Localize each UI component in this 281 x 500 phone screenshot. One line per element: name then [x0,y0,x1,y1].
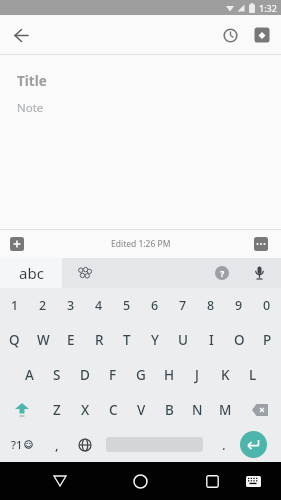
button[interactable] [239,392,281,427]
button[interactable]: 0 [253,288,281,322]
button[interactable]: U [169,322,197,357]
staticText: 8 [207,297,215,314]
button[interactable]: O [225,322,253,357]
staticText: G [136,366,146,384]
button[interactable]: T [113,322,141,357]
staticText: P [263,331,272,349]
staticText: . [222,436,226,454]
staticText: A [25,366,34,384]
staticText: 4 [95,297,103,314]
button[interactable]: V [127,392,155,427]
button[interactable] [0,392,43,427]
staticText: S [53,366,61,384]
staticText: W [37,331,50,349]
button[interactable]: Z [43,392,71,427]
staticText: Q [9,331,20,349]
button[interactable]: 2 [29,288,57,322]
staticText: K [221,366,230,384]
button[interactable]: 5 [113,288,141,322]
staticText: Title [17,72,47,90]
staticText: E [67,331,75,349]
button[interactable]: L [239,357,267,392]
staticText: Z [53,401,61,419]
button[interactable]: Q [0,322,29,357]
staticText: 3 [67,297,75,314]
button[interactable]: C [99,392,127,427]
button[interactable]: E [57,322,85,357]
staticText: ?1 [11,437,23,452]
button[interactable]: 1 [0,288,29,322]
staticText: T [123,331,131,349]
button[interactable]: D [71,357,99,392]
button[interactable] [62,258,108,288]
button[interactable]: , [43,427,71,462]
staticText: 2 [39,297,47,314]
staticText: ? [220,267,225,279]
button[interactable] [251,234,271,254]
staticText: O [234,331,245,349]
button[interactable]: Y [141,322,169,357]
staticText: J [195,366,199,384]
staticText: R [95,331,104,349]
button[interactable]: B [155,392,183,427]
button[interactable]: X [71,392,99,427]
button[interactable]: K [211,357,239,392]
button[interactable]: S [43,357,71,392]
button[interactable] [8,22,34,48]
button[interactable] [199,468,225,494]
button[interactable] [238,427,281,462]
button[interactable]: . [210,427,238,462]
staticText: I [209,331,214,349]
button[interactable]: H [155,357,183,392]
staticText: D [80,366,90,384]
staticText: L [249,366,257,384]
button[interactable]: I [197,322,225,357]
button[interactable] [47,468,73,494]
staticText: 1:32 [259,2,277,14]
button[interactable]: F [99,357,127,392]
button[interactable] [237,258,281,288]
button[interactable]: A [15,357,43,392]
staticText: V [137,401,146,419]
staticText: , [55,436,59,454]
staticText: 6 [151,297,159,314]
button[interactable]: M [211,392,239,427]
staticText: M [219,401,232,419]
staticText: N [192,401,203,419]
staticText: F [109,366,117,384]
staticText: Y [151,331,159,349]
button[interactable] [217,22,243,48]
staticText: U [178,331,188,349]
button[interactable]: 6 [141,288,169,322]
button[interactable]: R [85,322,113,357]
staticText: H [164,366,175,384]
button[interactable]: 8 [197,288,225,322]
button[interactable] [127,468,153,494]
button[interactable]: ?1 [0,427,43,462]
button[interactable] [99,427,210,462]
staticText: 1 [11,297,19,314]
staticText: 7 [179,297,187,314]
staticText: Edited 1:26 PM [111,238,171,250]
button[interactable]: 3 [57,288,85,322]
button[interactable]: N [183,392,211,427]
staticText: 9 [235,297,243,314]
staticText: C [109,401,118,419]
button[interactable]: 4 [85,288,113,322]
button[interactable] [7,234,27,254]
button[interactable]: J [183,357,211,392]
button[interactable] [71,427,99,462]
staticText: B [165,401,174,419]
button[interactable]: ? [207,258,237,288]
button[interactable]: W [29,322,57,357]
staticText: X [81,401,90,419]
button[interactable]: abc [0,258,62,288]
button[interactable]: 9 [225,288,253,322]
button[interactable] [249,22,275,48]
staticText: 5 [123,297,131,314]
staticText: Note [17,100,44,116]
button[interactable]: 7 [169,288,197,322]
button[interactable] [240,468,266,494]
button[interactable]: P [253,322,281,357]
button[interactable]: G [127,357,155,392]
